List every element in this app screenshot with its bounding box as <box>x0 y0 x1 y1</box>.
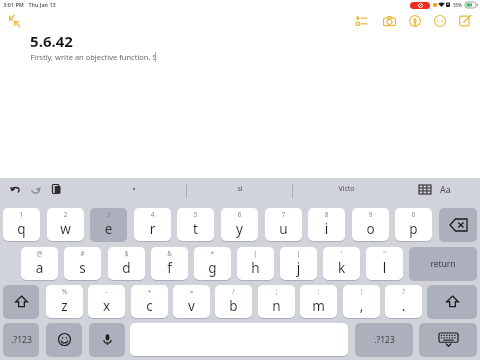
button[interactable] <box>3 285 39 318</box>
button[interactable]: : <box>300 285 337 318</box>
button[interactable]: $ <box>108 247 145 280</box>
button[interactable]: = <box>173 285 210 318</box>
button[interactable]: Compose <box>456 12 474 30</box>
button[interactable] <box>439 208 477 241</box>
staticText: + <box>131 287 168 295</box>
button[interactable]: si <box>187 178 292 200</box>
staticText: t <box>177 220 214 238</box>
button[interactable]: ; <box>258 285 295 318</box>
button[interactable] <box>46 323 82 356</box>
button[interactable]: # <box>64 247 101 280</box>
button[interactable]: " <box>366 247 403 280</box>
button[interactable]: 8 <box>308 208 345 241</box>
staticText: & <box>151 249 188 257</box>
staticText: 8 <box>308 210 345 218</box>
button[interactable]: Paste <box>48 181 64 196</box>
button[interactable] <box>0 178 186 200</box>
staticText: , <box>343 297 380 315</box>
staticText: si <box>237 184 243 194</box>
button[interactable]: - <box>88 285 125 318</box>
button[interactable]: 2 <box>47 208 84 241</box>
button[interactable] <box>427 285 477 318</box>
staticText: i <box>308 220 345 238</box>
button[interactable]: More <box>431 12 449 30</box>
staticText: $ <box>108 249 145 257</box>
button[interactable]: Checklist <box>353 12 371 30</box>
button[interactable]: ' <box>323 247 360 280</box>
button[interactable]: 6 <box>221 208 258 241</box>
staticText: w <box>47 220 84 238</box>
staticText: Victo <box>338 184 355 194</box>
staticText: q <box>3 220 40 238</box>
button[interactable]: @ <box>21 247 58 280</box>
staticText: k <box>323 259 360 277</box>
staticText: : <box>300 287 337 295</box>
staticText: 2 <box>47 210 84 218</box>
staticText: ! <box>343 287 380 295</box>
button[interactable]: Format <box>437 181 454 197</box>
button[interactable]: Victo <box>293 178 400 200</box>
button[interactable]: * <box>194 247 231 280</box>
button[interactable]: Undo <box>8 181 23 195</box>
staticText: e <box>90 220 127 238</box>
button[interactable]: 0 <box>395 208 432 241</box>
button[interactable]: 4 <box>134 208 171 241</box>
staticText: ? <box>385 287 422 295</box>
staticText: 55% <box>453 2 462 8</box>
staticText: p <box>395 220 432 238</box>
staticText: c <box>131 297 168 315</box>
staticText: Aa <box>440 183 451 195</box>
button[interactable]: return <box>409 247 477 280</box>
button[interactable]: 9 <box>352 208 389 241</box>
staticText: j <box>280 259 317 277</box>
staticText: 1 <box>3 210 40 218</box>
staticText: s <box>64 259 101 277</box>
staticText: h <box>237 259 274 277</box>
button[interactable]: 7 <box>265 208 302 241</box>
staticText: r <box>134 220 171 238</box>
staticText: v <box>173 297 210 315</box>
staticText: d <box>108 259 145 277</box>
staticText: 0 <box>395 210 432 218</box>
button[interactable] <box>419 323 477 356</box>
button[interactable]: + <box>131 285 168 318</box>
staticText: x <box>88 297 125 315</box>
staticText: return <box>430 258 456 270</box>
staticText: " <box>366 249 403 257</box>
button[interactable]: Table <box>417 182 433 196</box>
staticText: a <box>21 259 58 277</box>
button[interactable]: 5 <box>177 208 214 241</box>
button[interactable]: 3 <box>90 208 127 241</box>
staticText: @ <box>21 249 58 257</box>
staticText: 4 <box>134 210 171 218</box>
button[interactable]: Markup <box>406 12 424 30</box>
button[interactable]: 1 <box>3 208 40 241</box>
button[interactable]: % <box>46 285 83 318</box>
staticText: % <box>46 287 83 295</box>
staticText: ' <box>323 249 360 257</box>
button[interactable]: .?123 <box>355 323 413 356</box>
button[interactable]: / <box>215 285 252 318</box>
staticText: .?123 <box>374 334 395 346</box>
staticText: b <box>215 297 252 315</box>
button[interactable]: Collapse <box>6 13 22 29</box>
staticText: 5 <box>177 210 214 218</box>
staticText: = <box>173 287 210 295</box>
staticText: l <box>366 259 403 277</box>
button[interactable]: Redo <box>28 181 43 195</box>
staticText: - <box>88 287 125 295</box>
staticText: z <box>46 297 83 315</box>
staticText: . <box>385 297 422 315</box>
button[interactable]: ! <box>343 285 380 318</box>
button[interactable]: ( <box>237 247 274 280</box>
button[interactable]: ) <box>280 247 317 280</box>
button[interactable]: ? <box>385 285 422 318</box>
button[interactable]: & <box>151 247 188 280</box>
button[interactable]: Camera <box>380 12 398 30</box>
button[interactable]: .?123 <box>3 323 39 356</box>
button[interactable] <box>89 323 125 356</box>
staticText: ( <box>237 249 274 257</box>
staticText: # <box>64 249 101 257</box>
staticText: ; <box>258 287 295 295</box>
